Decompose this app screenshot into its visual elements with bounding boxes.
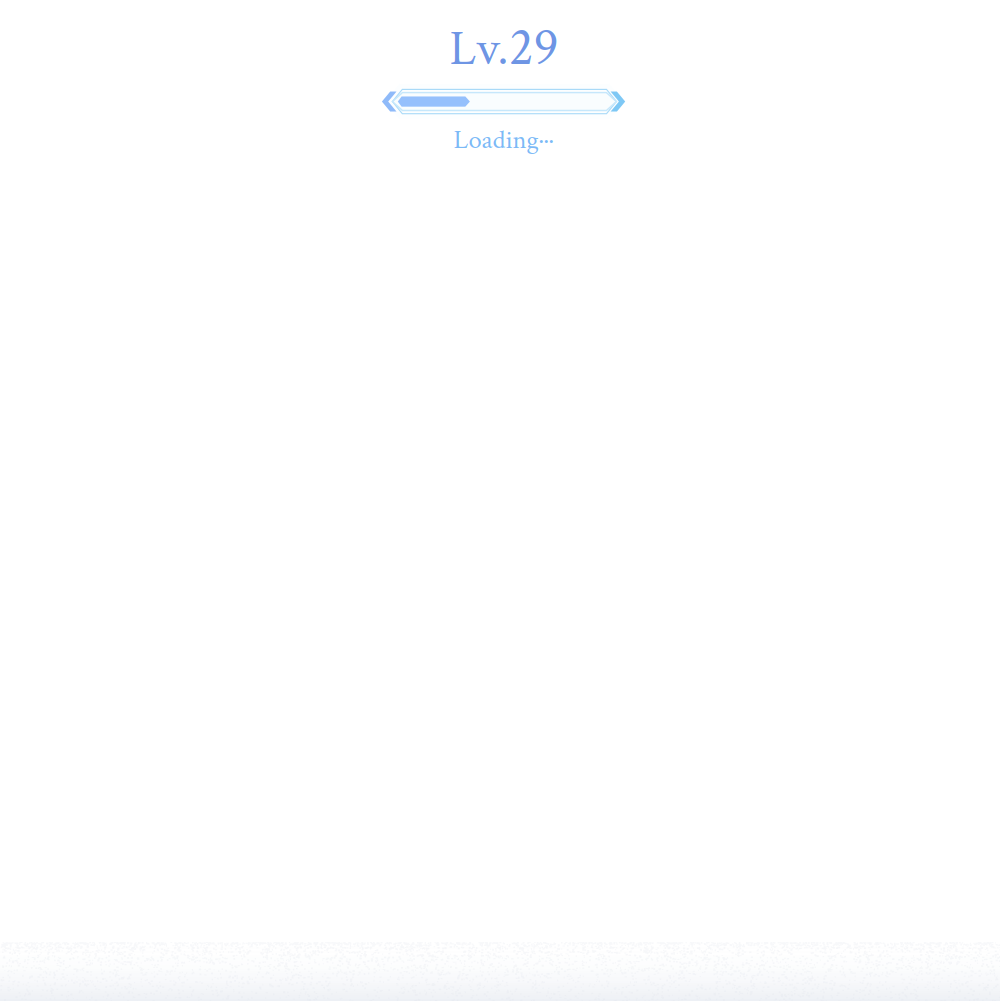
staticText: Loading··· [453,123,553,157]
staticText: Lv.29 [449,14,558,82]
